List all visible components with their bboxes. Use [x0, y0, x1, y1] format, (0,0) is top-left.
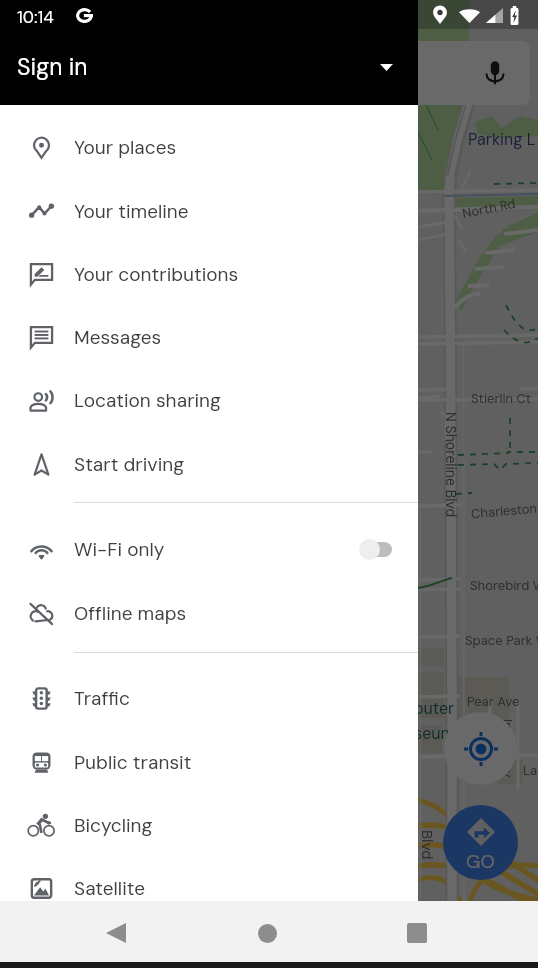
staticText: Satellite [74, 876, 145, 901]
button[interactable]: My location [444, 712, 517, 785]
button[interactable]: Messages [0, 305, 418, 369]
staticText: Inigo Way [499, 719, 516, 778]
staticText: Stierlin Ct [471, 390, 532, 407]
staticText: Shorebird Wa [470, 577, 538, 594]
button[interactable]: Satellite [0, 856, 418, 920]
staticText: La [523, 762, 538, 779]
staticText: GO [466, 849, 495, 874]
button[interactable]: Your contributions [0, 242, 418, 306]
staticText: Space Park Wa [465, 632, 538, 649]
button[interactable]: Voice search [262, 41, 530, 105]
button[interactable]: GO [443, 805, 518, 880]
staticText: Traffic [74, 686, 130, 711]
staticText: Start driving [74, 452, 185, 477]
staticText: Your contributions [74, 262, 239, 287]
button[interactable]: Back [92, 909, 140, 957]
other: Voice search [480, 58, 510, 88]
button[interactable]: Sign in [0, 29, 418, 105]
button[interactable]: Public transit [0, 730, 418, 794]
staticText: Your timeline [74, 199, 189, 224]
button[interactable]: Your timeline [0, 179, 418, 243]
button[interactable]: Your places [0, 115, 418, 179]
staticText: Pear Ave [467, 693, 520, 710]
staticText: Offline maps [74, 601, 187, 626]
button[interactable]: Bicycling [0, 793, 418, 857]
button[interactable]: Location sharing [0, 368, 418, 432]
button[interactable]: Offline maps [0, 581, 418, 645]
staticText: Wi-Fi only [74, 537, 165, 562]
staticText: outer [414, 698, 455, 719]
staticText: Public transit [74, 750, 192, 775]
staticText: Your places [74, 135, 177, 160]
button[interactable]: Wi-Fi only [0, 517, 418, 581]
staticText: North Rd [461, 195, 517, 222]
button[interactable]: Home [243, 909, 291, 957]
staticText: Parking L [468, 129, 536, 150]
button[interactable]: Recents [393, 909, 441, 957]
button[interactable]: Start driving [0, 432, 418, 496]
button[interactable]: Traffic [0, 666, 418, 730]
staticText: N Shoreline Blvd [442, 412, 460, 518]
staticText: 10:14 [17, 6, 54, 28]
staticText: Messages [74, 325, 162, 350]
staticText: seun [414, 723, 450, 744]
staticText: Blvd [417, 830, 437, 860]
staticText: Charleston R [470, 499, 538, 522]
staticText: Bicycling [74, 813, 153, 838]
staticText: Sign in [17, 52, 88, 82]
staticText: Location sharing [74, 388, 222, 413]
